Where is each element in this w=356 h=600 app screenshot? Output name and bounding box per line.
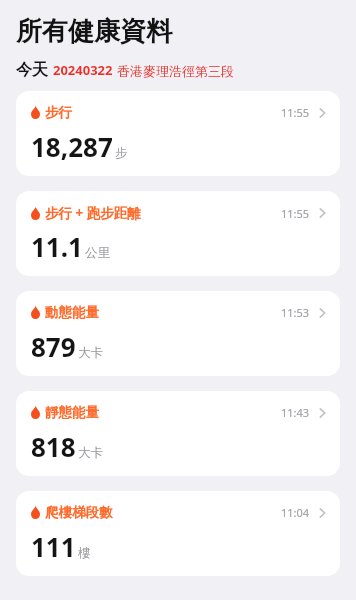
staticText: 大卡 xyxy=(78,445,103,461)
staticText: 步 xyxy=(115,145,128,161)
staticText: 步行 + 跑步距離 xyxy=(45,204,141,222)
staticText: 11.1 xyxy=(31,229,83,264)
staticText: 今天 xyxy=(16,60,48,80)
staticText: 靜態能量 xyxy=(45,404,99,421)
staticText: 11:43 xyxy=(281,405,310,420)
button[interactable]: 動態能量 xyxy=(16,291,340,376)
staticText: 818 xyxy=(31,429,76,464)
staticText: 20240322 xyxy=(53,61,113,79)
staticText: 香港麥理浩徑第三段 xyxy=(117,63,234,79)
staticText: 公里 xyxy=(85,245,110,261)
staticText: 動態能量 xyxy=(45,304,99,321)
staticText: 11:04 xyxy=(281,505,310,520)
button[interactable]: 步行 + 跑步距離 xyxy=(16,191,340,276)
button[interactable]: 爬樓梯段數 xyxy=(16,491,340,576)
staticText: 步行 xyxy=(45,104,72,121)
staticText: 11:53 xyxy=(281,305,310,320)
staticText: 11:55 xyxy=(281,105,310,120)
staticText: 大卡 xyxy=(78,345,103,361)
staticText: 11:55 xyxy=(281,206,310,221)
staticText: 879 xyxy=(31,329,76,364)
button[interactable]: 步行 xyxy=(16,91,340,176)
button[interactable]: 靜態能量 xyxy=(16,391,340,476)
staticText: 18,287 xyxy=(31,129,113,164)
staticText: 爬樓梯段數 xyxy=(45,504,113,521)
staticText: 樓 xyxy=(78,545,91,561)
staticText: 所有健康資料 xyxy=(16,15,172,48)
staticText: 111 xyxy=(31,529,76,564)
